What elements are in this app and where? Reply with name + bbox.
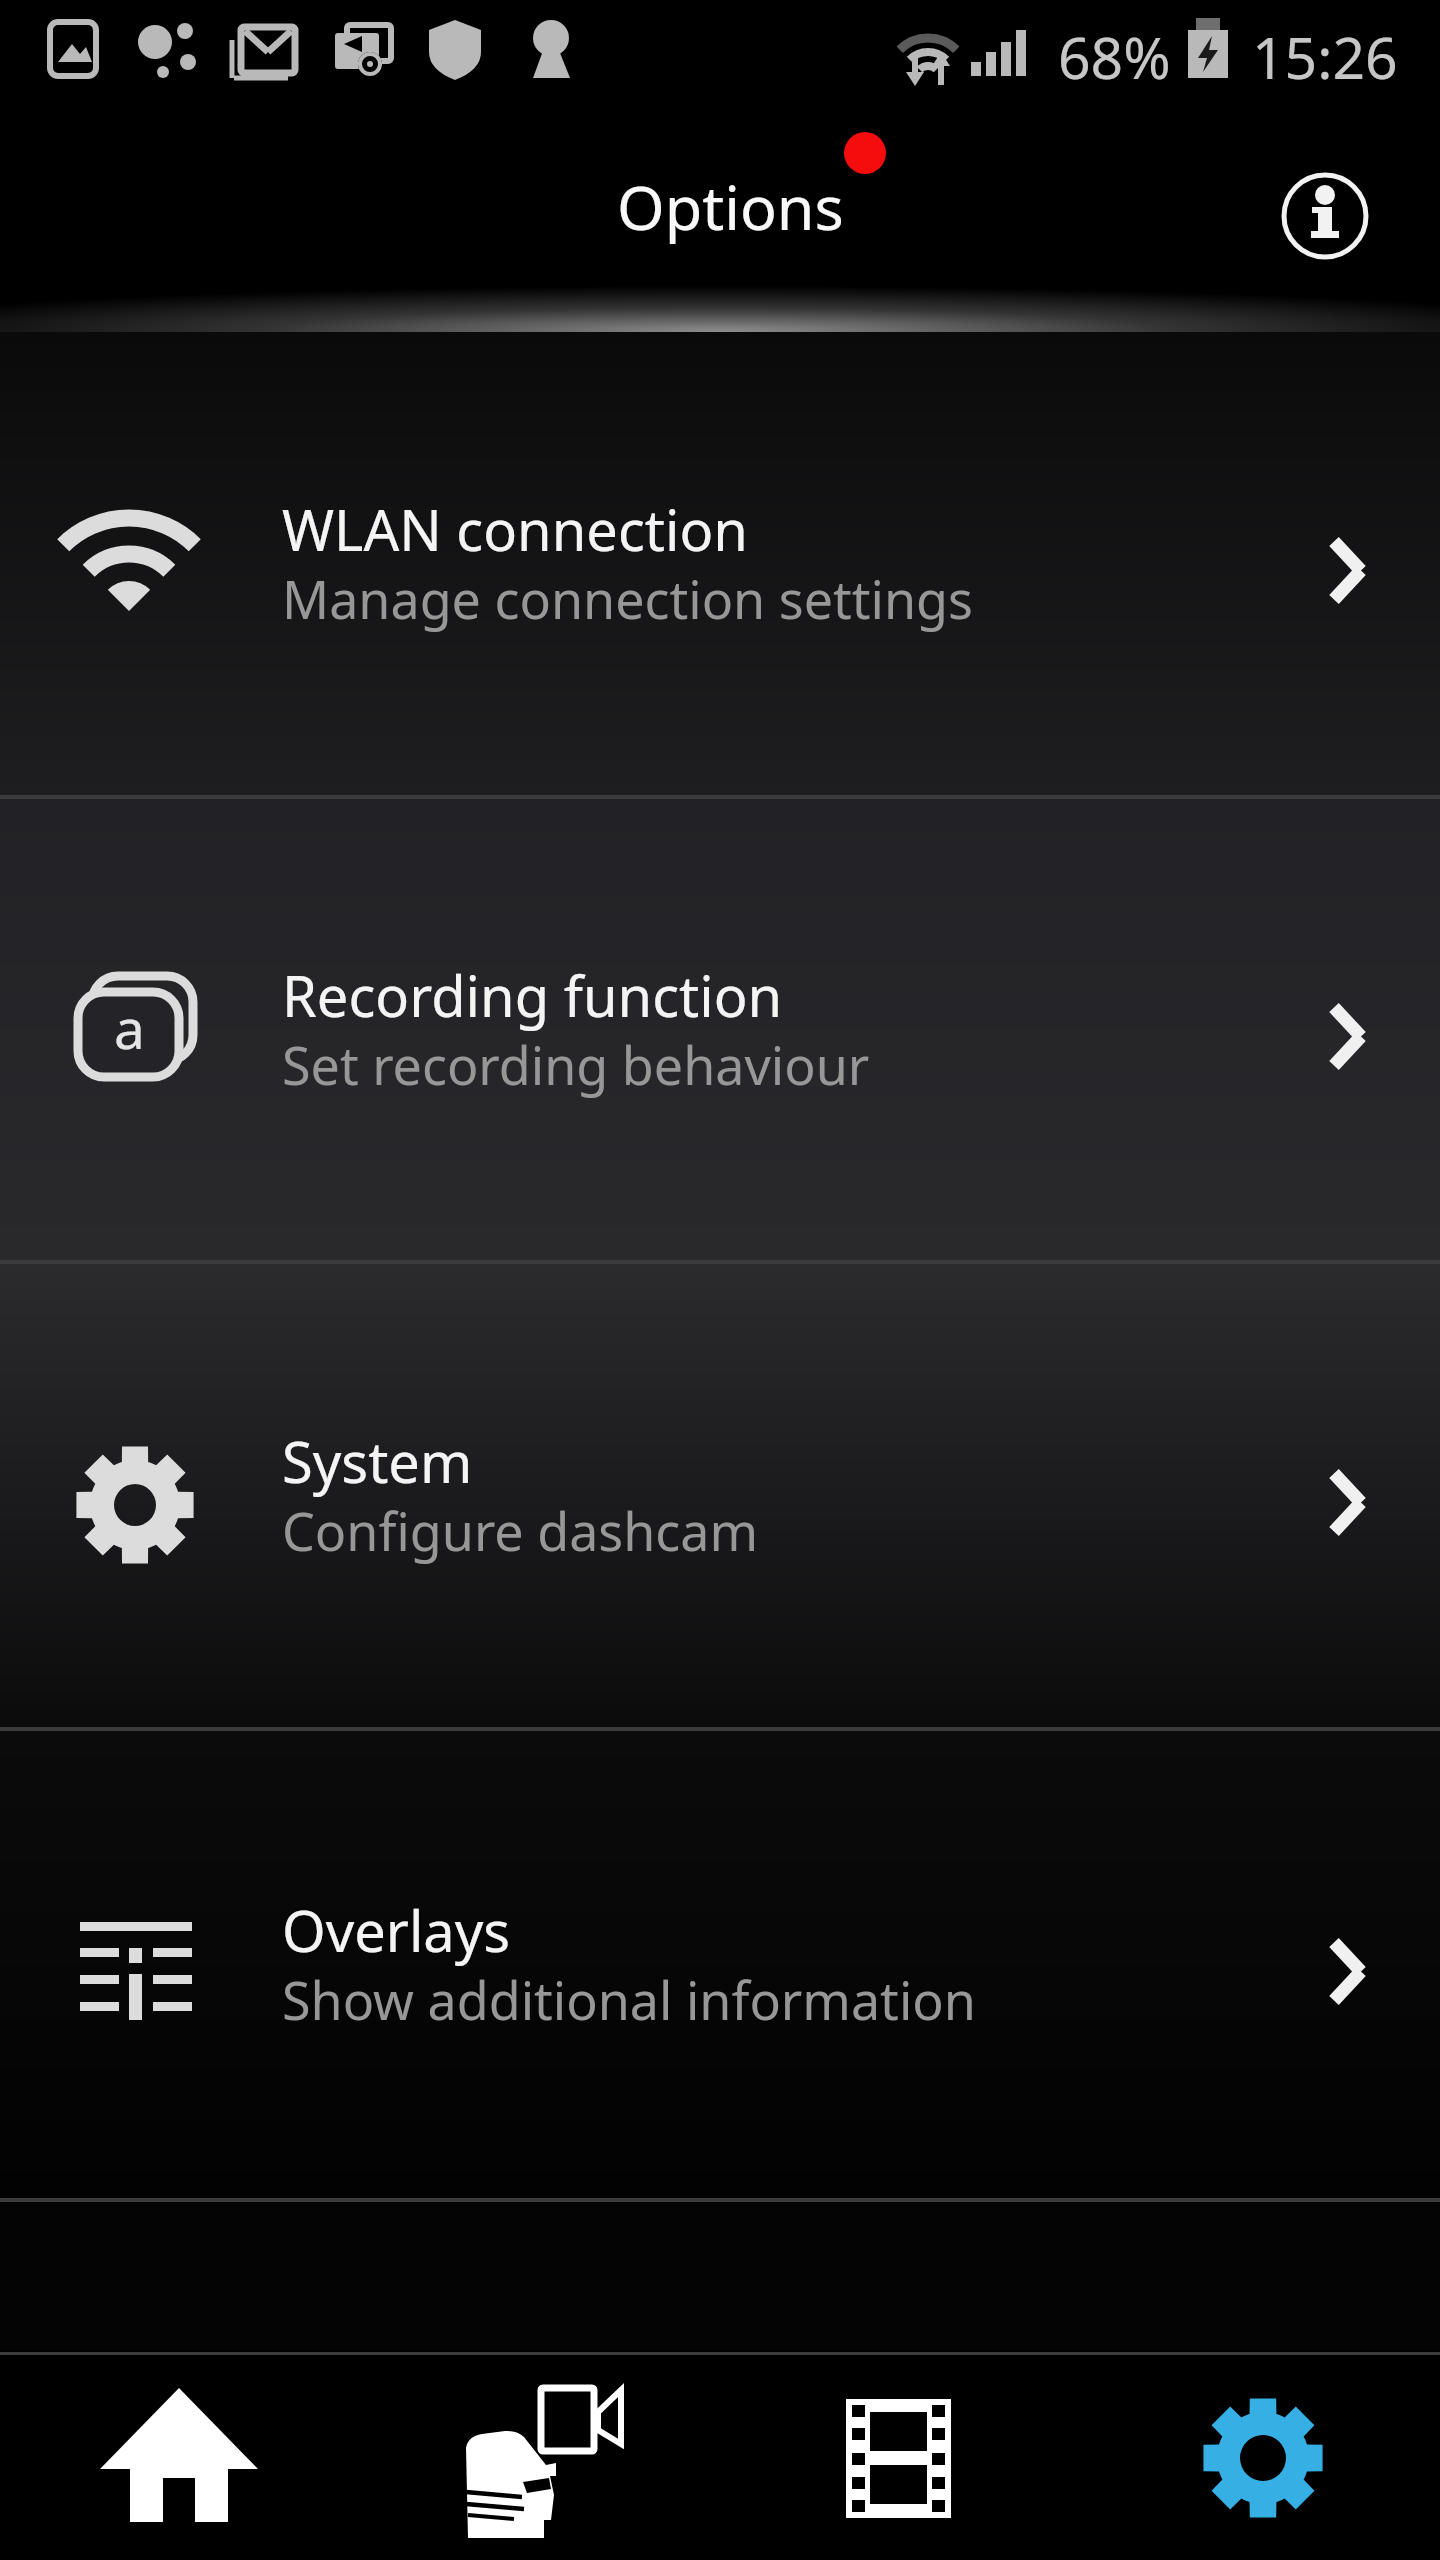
button[interactable] xyxy=(0,2355,360,2560)
staticText: a xyxy=(114,990,145,1065)
staticText: Configure dashcam xyxy=(282,1495,759,1566)
staticText: Overlays xyxy=(282,1892,511,1968)
staticText: Set recording behaviour xyxy=(282,1029,870,1100)
staticText: 15:26 xyxy=(1252,18,1398,96)
button[interactable]: Overlays xyxy=(0,1731,1440,2198)
button[interactable]: WLAN connection xyxy=(0,332,1440,795)
staticText: Show additional information xyxy=(282,1964,976,2035)
button[interactable] xyxy=(1276,167,1374,265)
staticText: WLAN connection xyxy=(282,491,748,567)
button[interactable]: Recording function xyxy=(0,799,1440,1260)
staticText: 68% xyxy=(1058,18,1171,96)
staticText: Options xyxy=(617,165,844,248)
staticText: Manage connection settings xyxy=(282,563,973,634)
button[interactable] xyxy=(720,2355,1080,2560)
staticText: Recording function xyxy=(282,957,783,1033)
button[interactable] xyxy=(360,2355,720,2560)
staticText: System xyxy=(282,1423,473,1499)
button[interactable] xyxy=(1080,2355,1440,2560)
button[interactable]: System xyxy=(0,1264,1440,1727)
